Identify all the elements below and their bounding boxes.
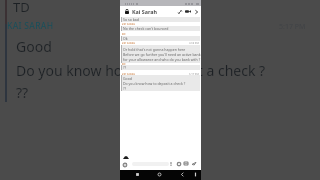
button[interactable]: GIF xyxy=(184,162,188,165)
staticText: KAI SARAH xyxy=(122,23,136,25)
staticText: Good xyxy=(16,37,52,56)
staticText: 5:17 PM xyxy=(189,73,199,75)
other: More options xyxy=(195,10,198,14)
button[interactable]: Recents xyxy=(135,172,140,177)
staticText: for your allowance and who do you bank w… xyxy=(123,57,201,62)
staticText: KAI SARAH xyxy=(122,42,136,44)
button[interactable]: Good xyxy=(121,75,200,91)
staticText: ME xyxy=(122,33,126,35)
button[interactable]: Home xyxy=(157,172,162,177)
staticText: ?? xyxy=(123,86,127,91)
staticText: TD xyxy=(13,0,30,16)
staticText: Do you know how to deposit a check ? xyxy=(16,61,266,80)
staticText: Kai Sarah xyxy=(132,8,158,15)
other: Encrypted xyxy=(125,9,129,14)
button[interactable]: Encrypted xyxy=(120,6,201,17)
staticText: So so bad xyxy=(123,17,139,22)
button[interactable]: Camera xyxy=(123,163,127,167)
button[interactable]: Voice message xyxy=(170,162,172,166)
staticText: ?? xyxy=(123,65,127,70)
staticText: 4:58 PM xyxy=(189,42,199,44)
button[interactable]: Assistant xyxy=(193,172,198,177)
staticText: KAI SARAH xyxy=(122,73,136,75)
button[interactable]: Or hold that's not gonna happen here xyxy=(121,45,200,63)
staticText: Or hold that's not gonna happen here xyxy=(123,47,186,52)
button[interactable]: Ok xyxy=(121,36,200,41)
staticText: Ok xyxy=(123,36,128,41)
other: Video call xyxy=(185,10,191,13)
staticText: ME xyxy=(122,63,126,65)
button[interactable]: So so bad xyxy=(121,17,200,22)
staticText: ?? xyxy=(16,83,29,102)
staticText: Good xyxy=(123,76,132,81)
button[interactable]: No the check can't bounced xyxy=(121,26,200,31)
staticText: Do you know how to deposit a check ? xyxy=(123,81,186,86)
button[interactable]: Send xyxy=(192,162,196,165)
staticText: KAI SARAH xyxy=(7,20,54,32)
button[interactable]: Back xyxy=(180,172,185,177)
button[interactable]: Stickers xyxy=(177,162,181,166)
button[interactable]: Attach xyxy=(123,156,129,159)
staticText: Before we go further you'll need an acti… xyxy=(123,52,201,57)
staticText: No the check can't bounced xyxy=(123,26,169,31)
other: Call xyxy=(178,10,182,14)
button[interactable]: ?? xyxy=(121,65,200,70)
